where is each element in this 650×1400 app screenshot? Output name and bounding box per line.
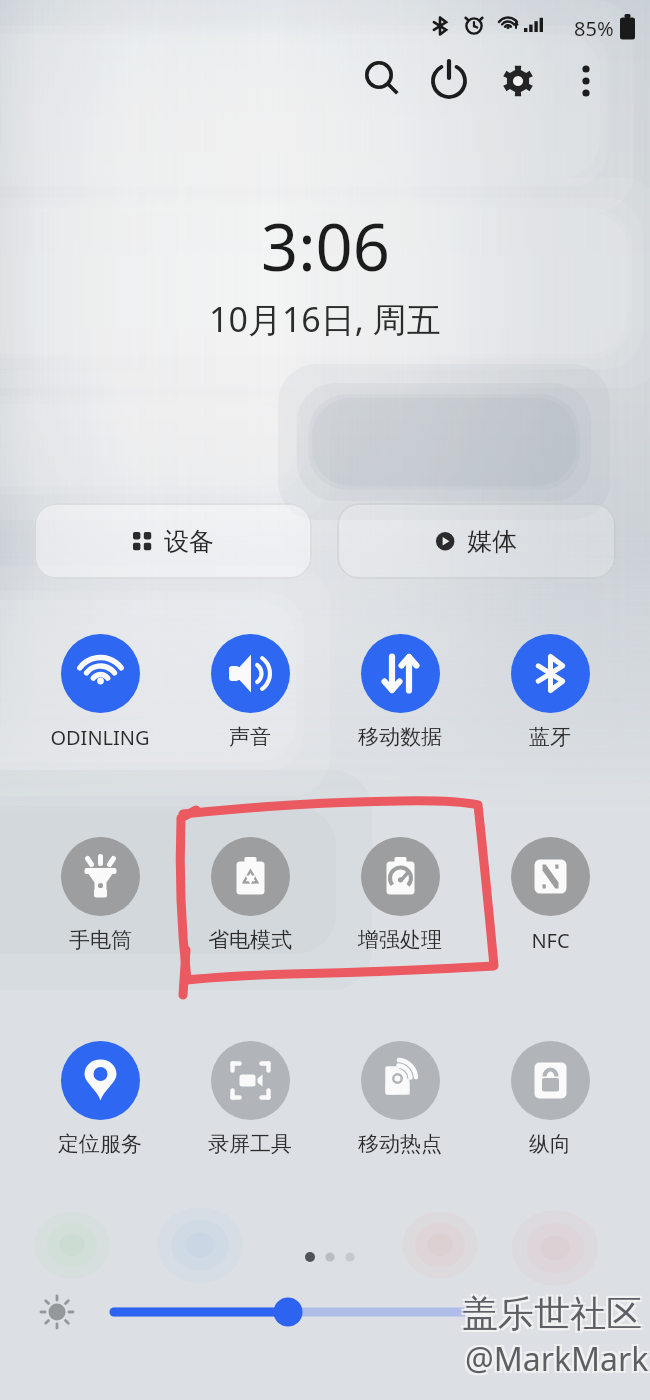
staticText: 增强处理 [358,927,442,953]
staticText: 手电筒 [69,927,132,953]
button[interactable]: Settings [490,50,546,106]
staticText: 录屏工具 [208,1131,292,1157]
staticText: @MarkMark [463,1339,647,1383]
staticText: 定位服务 [58,1131,142,1157]
staticText: @MarkMark [463,1335,647,1379]
staticText: 85% [574,15,614,42]
button[interactable]: 蓝牙 [475,634,625,750]
button[interactable]: 移动数据 [325,634,475,750]
staticText: 设备 [164,526,214,557]
staticText: ODINLING [50,724,150,751]
staticText: 蓝牙 [529,724,571,750]
button[interactable]: NFC [475,837,625,954]
button[interactable]: 定位服务 [25,1041,175,1157]
button[interactable]: 纵向 [475,1041,625,1157]
staticText: 盖乐世社区 [464,1293,644,1338]
staticText: 10月16日, 周五 [209,296,441,342]
staticText: @MarkMark [467,1335,650,1379]
staticText: @MarkMark [467,1339,650,1383]
button[interactable]: Search [353,50,409,106]
button[interactable]: ODINLING [25,634,175,751]
button[interactable]: 录屏工具 [175,1041,325,1157]
staticText: 移动数据 [358,724,442,750]
staticText: 纵向 [529,1131,571,1157]
staticText: 盖乐世社区 [462,1291,642,1336]
button[interactable]: 声音 [175,634,325,750]
button[interactable]: 手电筒 [25,837,175,953]
button[interactable]: 省电模式 [175,837,325,953]
staticText: 声音 [229,724,271,750]
staticText: 3:06 [261,202,390,291]
staticText: 盖乐世社区 [460,1293,640,1338]
button[interactable]: More options [558,50,614,106]
staticText: 媒体 [467,526,517,557]
staticText: @MarkMark [465,1337,649,1381]
button[interactable]: 增强处理 [325,837,475,953]
staticText: 盖乐世社区 [464,1289,644,1334]
button[interactable]: 设备 [34,503,312,579]
button[interactable]: Power [421,50,477,106]
button[interactable]: 媒体 [337,503,616,579]
staticText: NFC [531,927,570,954]
button[interactable]: 移动热点 [325,1041,475,1157]
staticText: 省电模式 [208,927,292,953]
staticText: 移动热点 [358,1131,442,1157]
staticText: 盖乐世社区 [460,1289,640,1334]
